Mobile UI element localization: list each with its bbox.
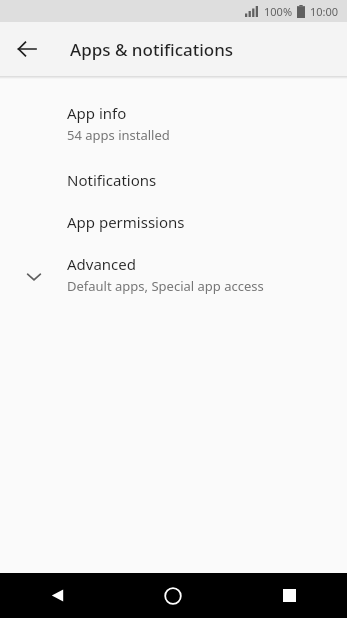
- staticText: App info: [67, 103, 127, 123]
- button[interactable]: Back: [7, 29, 47, 69]
- staticText: Default apps, Special app access: [67, 277, 264, 295]
- button[interactable]: Back: [0, 573, 115, 618]
- staticText: 100%: [264, 4, 293, 19]
- staticText: 54 apps installed: [67, 126, 170, 144]
- button[interactable]: Advanced: [0, 232, 347, 303]
- staticText: Advanced: [67, 254, 137, 274]
- button[interactable]: Notifications: [0, 144, 347, 190]
- button[interactable]: App info: [0, 91, 347, 144]
- staticText: App permissions: [67, 212, 185, 232]
- staticText: Apps & notifications: [70, 38, 234, 61]
- staticText: Notifications: [67, 170, 157, 190]
- staticText: 10:00: [310, 4, 339, 19]
- button[interactable]: Home: [115, 573, 231, 618]
- button[interactable]: Recents: [231, 573, 347, 618]
- button[interactable]: App permissions: [0, 190, 347, 232]
